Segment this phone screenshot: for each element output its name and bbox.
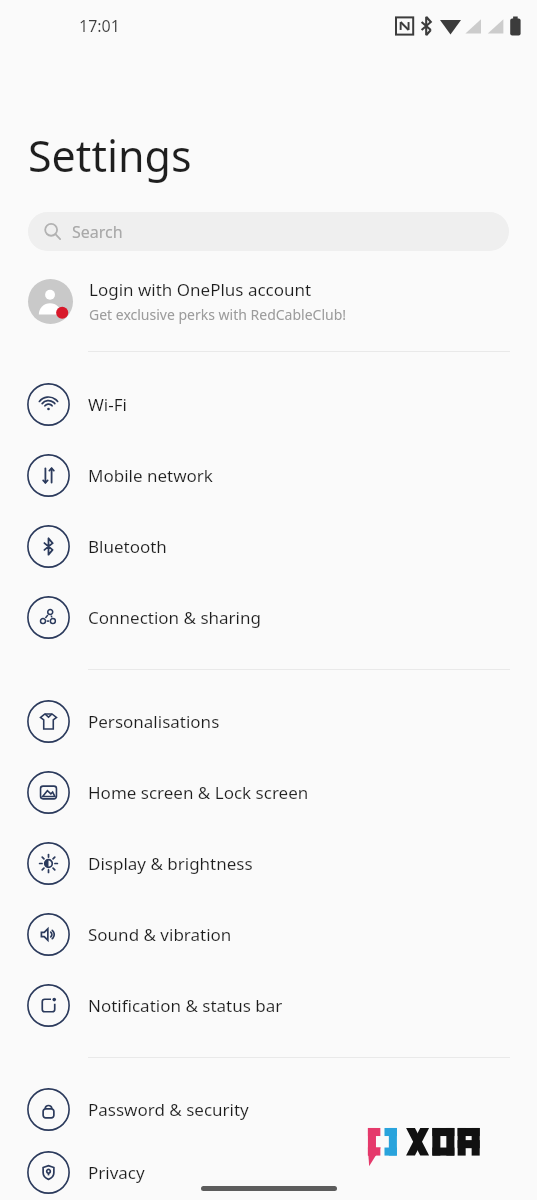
- staticText: Search: [72, 221, 123, 243]
- staticText: Personalisations: [88, 710, 220, 733]
- button[interactable]: Login with OnePlus account: [0, 273, 537, 329]
- staticText: Settings: [28, 126, 192, 185]
- staticText: Notification & status bar: [88, 994, 283, 1017]
- button[interactable]: Display & brightness: [0, 828, 537, 899]
- staticText: Home screen & Lock screen: [88, 781, 309, 804]
- staticText: Bluetooth: [88, 535, 167, 558]
- staticText: Password & security: [88, 1098, 249, 1121]
- button[interactable]: Wi-Fi: [0, 369, 537, 440]
- button[interactable]: Search: [28, 212, 509, 251]
- button[interactable]: Password & security: [0, 1074, 537, 1145]
- staticText: Login with OnePlus account: [89, 278, 312, 301]
- button[interactable]: Personalisations: [0, 686, 537, 757]
- staticText: Get exclusive perks with RedCableClub!: [89, 305, 347, 324]
- staticText: Privacy: [88, 1161, 145, 1184]
- staticText: 17:01: [79, 15, 120, 37]
- button[interactable]: Notification & status bar: [0, 970, 537, 1041]
- button[interactable]: Privacy: [0, 1145, 537, 1200]
- staticText: Mobile network: [88, 464, 213, 487]
- staticText: Connection & sharing: [88, 606, 261, 629]
- button[interactable]: Sound & vibration: [0, 899, 537, 970]
- button[interactable]: Home screen & Lock screen: [0, 757, 537, 828]
- button[interactable]: Bluetooth: [0, 511, 537, 582]
- staticText: Sound & vibration: [88, 923, 232, 946]
- staticText: Wi-Fi: [88, 393, 127, 416]
- staticText: Display & brightness: [88, 852, 253, 875]
- button[interactable]: Mobile network: [0, 440, 537, 511]
- button[interactable]: Connection & sharing: [0, 582, 537, 653]
